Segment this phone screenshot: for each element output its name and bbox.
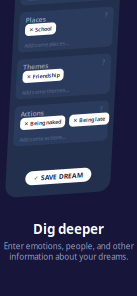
staticText: Being late: [86, 121, 112, 129]
staticText: Add some characters...: [27, 0, 82, 3]
staticText: ?: [106, 111, 109, 119]
staticText: Add some actions...: [27, 137, 73, 144]
staticText: Being naked: [37, 121, 68, 129]
staticText: SAVE DREAM: [51, 176, 93, 184]
staticText: Add some places...: [27, 43, 71, 50]
staticText: Places: [27, 17, 47, 25]
staticText: Themes: [27, 64, 52, 72]
staticText: ✕: [31, 28, 35, 34]
button[interactable]: ✓: [35, 173, 101, 187]
staticText: Actions: [27, 111, 50, 119]
staticText: Friendship: [37, 74, 64, 82]
staticText: Enter emotions, people, and other inform…: [3, 241, 133, 262]
staticText: ✕: [80, 122, 84, 128]
staticText: ✕: [31, 75, 35, 81]
staticText: Dig deeper: [33, 220, 104, 238]
staticText: Add some themes...: [27, 90, 74, 97]
staticText: ✓: [44, 177, 48, 183]
staticText: ✕: [31, 122, 35, 128]
staticText: School: [37, 27, 54, 35]
